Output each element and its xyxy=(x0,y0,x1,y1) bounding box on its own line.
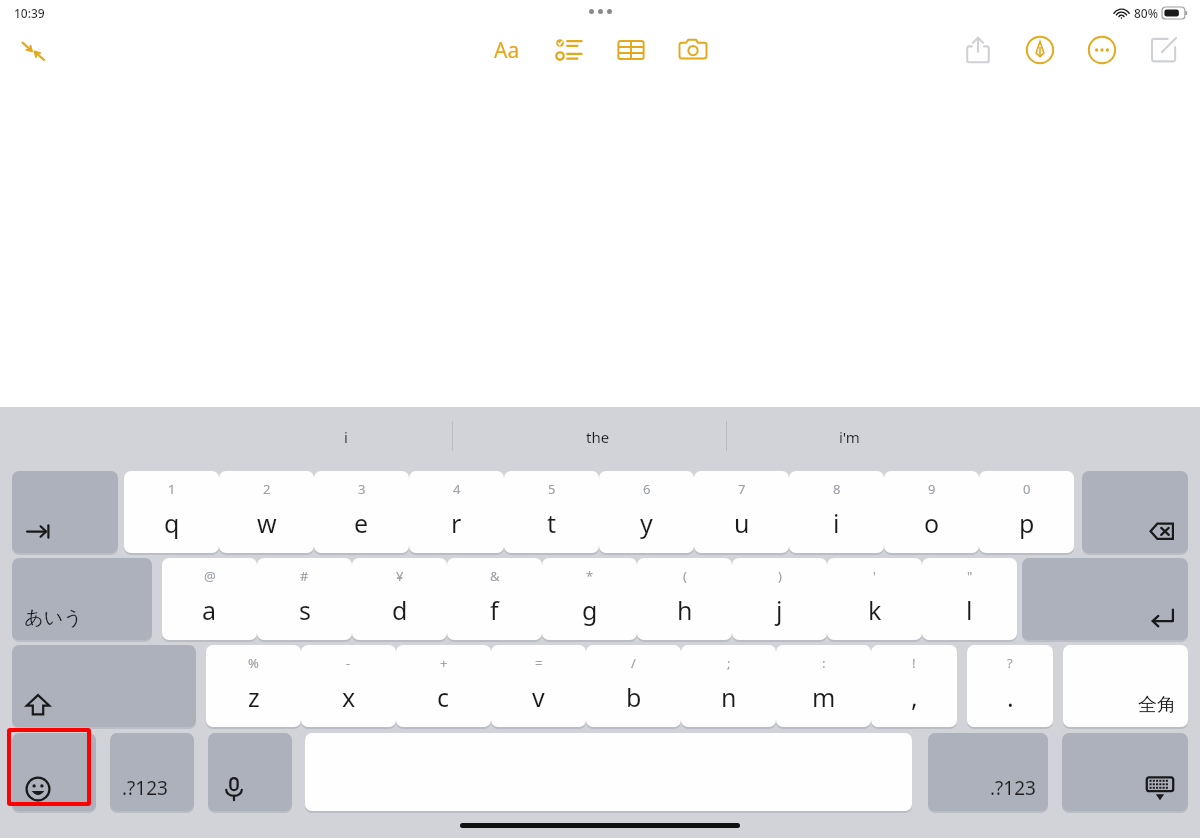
staticText: s xyxy=(299,593,311,627)
button[interactable]: % xyxy=(206,645,301,727)
staticText: あいう xyxy=(24,606,83,630)
button[interactable]: " xyxy=(922,558,1017,640)
button[interactable]: ' xyxy=(827,558,922,640)
staticText: ¥ xyxy=(396,567,404,585)
button[interactable]: @ xyxy=(162,558,257,640)
button[interactable]: あいう xyxy=(12,558,152,640)
staticText: ? xyxy=(1007,654,1013,672)
button[interactable]: .?123 xyxy=(928,733,1048,811)
staticText: 80% xyxy=(1134,5,1158,21)
button[interactable]: 9 xyxy=(884,471,979,553)
staticText: 1 xyxy=(168,480,176,498)
button[interactable]: # xyxy=(257,558,352,640)
staticText: z xyxy=(248,680,260,714)
button[interactable]: 3 xyxy=(314,471,409,553)
button[interactable]: ¥ xyxy=(352,558,447,640)
staticText: k xyxy=(868,593,882,627)
button[interactable]: / xyxy=(586,645,681,727)
staticText: : xyxy=(822,654,826,672)
staticText: n xyxy=(721,680,737,714)
button[interactable]: 8 xyxy=(789,471,884,553)
button[interactable]: - xyxy=(301,645,396,727)
staticText: 10:39 xyxy=(14,5,45,21)
button[interactable]: 0 xyxy=(979,471,1074,553)
staticText: v xyxy=(532,680,545,714)
button[interactable]: ; xyxy=(681,645,776,727)
staticText: ( xyxy=(683,567,687,585)
button[interactable]: Hide keyboard xyxy=(1062,733,1188,811)
staticText: . xyxy=(1007,680,1014,714)
button[interactable]: 2 xyxy=(219,471,314,553)
staticText: 3 xyxy=(358,480,366,498)
staticText: 2 xyxy=(263,480,271,498)
staticText: i xyxy=(344,427,348,447)
staticText: " xyxy=(967,567,973,585)
staticText: x xyxy=(342,680,356,714)
staticText: m xyxy=(812,680,836,714)
staticText: 8 xyxy=(833,480,841,498)
staticText: c xyxy=(437,680,450,714)
staticText: 0 xyxy=(1023,480,1031,498)
button[interactable]: ( xyxy=(637,558,732,640)
button[interactable]: = xyxy=(491,645,586,727)
staticText: e xyxy=(354,506,369,540)
staticText: w xyxy=(257,506,277,540)
button[interactable]: Collapse xyxy=(14,32,52,70)
button[interactable]: 1 xyxy=(124,471,219,553)
staticText: & xyxy=(490,567,500,585)
button[interactable]: Delete xyxy=(1082,471,1188,553)
button[interactable]: Format text xyxy=(485,28,529,72)
button[interactable]: Dictation xyxy=(208,733,292,811)
staticText: 7 xyxy=(738,480,746,498)
button[interactable]: 6 xyxy=(599,471,694,553)
staticText: i xyxy=(833,506,840,540)
staticText: b xyxy=(626,680,642,714)
staticText: f xyxy=(490,593,499,627)
staticText: l xyxy=(966,593,973,627)
staticText: , xyxy=(911,680,918,714)
button[interactable]: : xyxy=(776,645,871,727)
button[interactable]: Compose xyxy=(1142,28,1186,72)
staticText: j xyxy=(776,593,783,627)
button[interactable]: .?123 xyxy=(110,733,194,811)
staticText: = xyxy=(535,654,543,672)
button[interactable]: + xyxy=(396,645,491,727)
button[interactable]: & xyxy=(447,558,542,640)
staticText: % xyxy=(248,654,259,672)
staticText: 全角 xyxy=(1138,693,1176,717)
button[interactable]: Emoji xyxy=(12,733,96,811)
staticText: r xyxy=(451,506,462,540)
button[interactable]: ) xyxy=(732,558,827,640)
button[interactable]: 全角 xyxy=(1063,645,1188,727)
staticText: + xyxy=(440,654,448,672)
button[interactable]: Markup xyxy=(1018,28,1062,72)
staticText: - xyxy=(346,654,351,672)
button[interactable]: ? xyxy=(967,645,1053,727)
staticText: the xyxy=(586,427,610,447)
button[interactable]: 4 xyxy=(409,471,504,553)
button[interactable]: Tab xyxy=(12,471,118,553)
staticText: a xyxy=(202,593,217,627)
staticText: 4 xyxy=(453,480,461,498)
button[interactable]: Shift xyxy=(12,645,196,727)
button[interactable]: Share xyxy=(956,28,1000,72)
staticText: 6 xyxy=(643,480,651,498)
button[interactable]: Camera xyxy=(671,28,715,72)
button[interactable]: Table xyxy=(609,28,653,72)
staticText: # xyxy=(300,567,309,585)
staticText: d xyxy=(392,593,408,627)
staticText: y xyxy=(640,506,653,540)
button[interactable]: More xyxy=(1080,28,1124,72)
button[interactable]: ! xyxy=(871,645,957,727)
button[interactable]: 5 xyxy=(504,471,599,553)
staticText: .?123 xyxy=(990,775,1036,801)
button[interactable]: Return xyxy=(1022,558,1188,640)
staticText: q xyxy=(164,506,180,540)
staticText: ; xyxy=(727,654,731,672)
button[interactable]: Checklist xyxy=(547,28,591,72)
staticText: Aa xyxy=(494,36,520,65)
staticText: p xyxy=(1019,506,1035,540)
button[interactable]: * xyxy=(542,558,637,640)
button[interactable]: 7 xyxy=(694,471,789,553)
